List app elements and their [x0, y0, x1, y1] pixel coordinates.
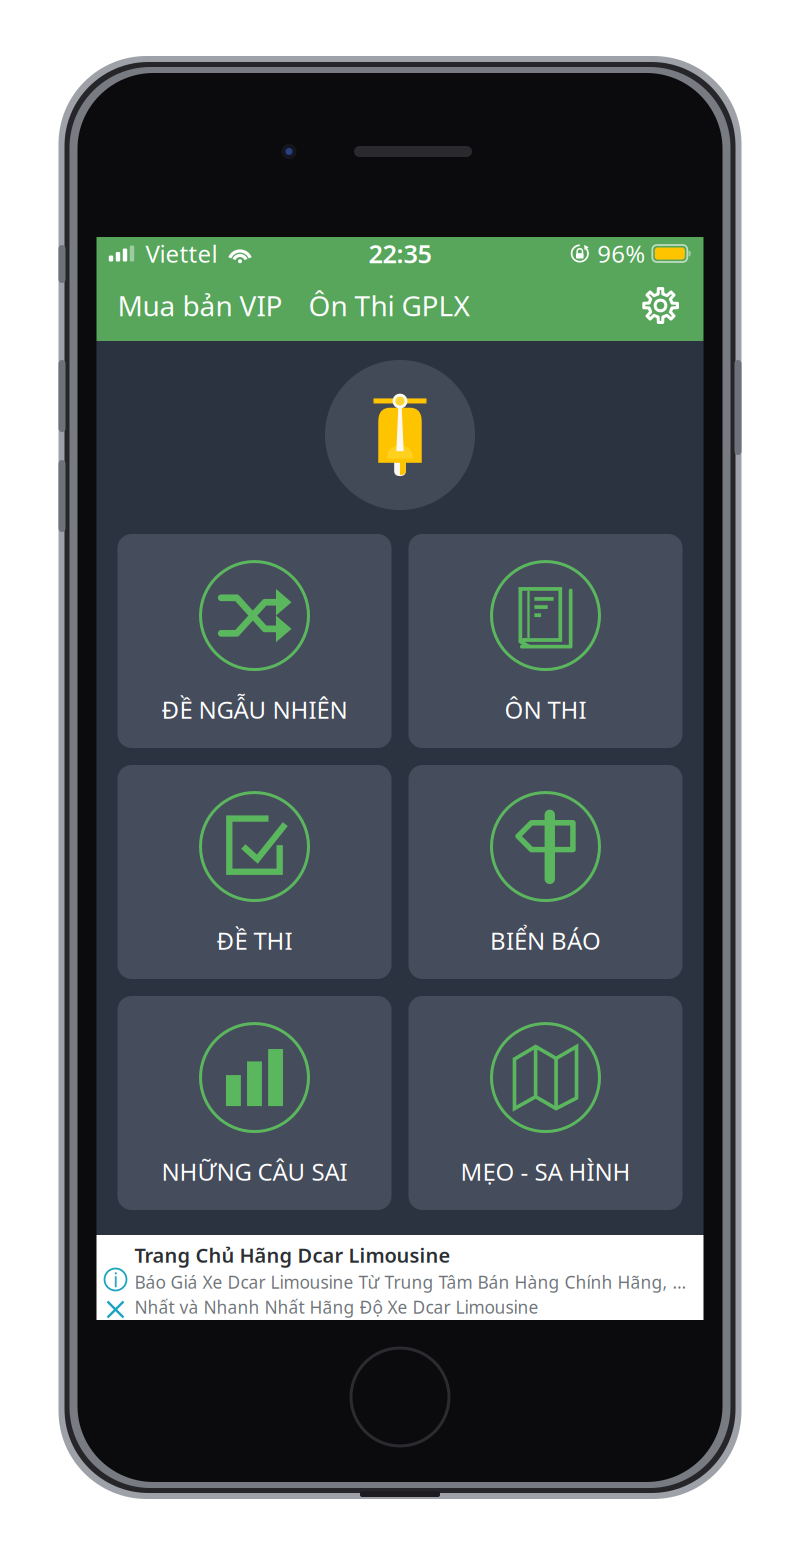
staticText: BIỂN BÁO	[490, 925, 601, 956]
button[interactable]: BIỂN BÁO	[408, 765, 682, 979]
staticText: Mua bản VIP	[117, 287, 282, 324]
button[interactable]: NHỮNG CÂU SAI	[117, 996, 391, 1210]
button[interactable]: Mua bản VIP	[117, 287, 282, 324]
button[interactable]: MẸO - SA HÌNH	[408, 996, 682, 1210]
staticText: Viettel	[145, 238, 217, 269]
staticText: Nhất và Nhanh Nhất Hãng Độ Xe Dcar Limou…	[134, 1295, 538, 1318]
button[interactable]: Trang Chủ Hãng Dcar Limousine	[96, 1235, 703, 1320]
button[interactable]: ĐỀ NGẪU NHIÊN	[117, 534, 391, 748]
button[interactable]: Close ad	[103, 1297, 127, 1321]
staticText: NHỮNG CÂU SAI	[161, 1156, 347, 1187]
staticText: ÔN THI	[504, 694, 586, 725]
button[interactable]: Ad information	[103, 1267, 127, 1291]
staticText: Trang Chủ Hãng Dcar Limousine	[134, 1242, 450, 1268]
staticText: Báo Giá Xe Dcar Limousine Từ Trung Tâm B…	[134, 1270, 695, 1293]
staticText: MẸO - SA HÌNH	[460, 1156, 630, 1187]
staticText: ĐỀ THI	[216, 925, 292, 956]
staticText: Ôn Thi GPLX	[308, 287, 469, 324]
staticText: 22:35	[368, 237, 431, 270]
button[interactable]: ÔN THI	[408, 534, 682, 748]
staticText: i	[113, 1266, 118, 1293]
staticText: 96%	[597, 238, 645, 269]
button[interactable]: Settings	[638, 283, 682, 327]
staticText: ĐỀ NGẪU NHIÊN	[161, 694, 347, 725]
button[interactable]: ĐỀ THI	[117, 765, 391, 979]
